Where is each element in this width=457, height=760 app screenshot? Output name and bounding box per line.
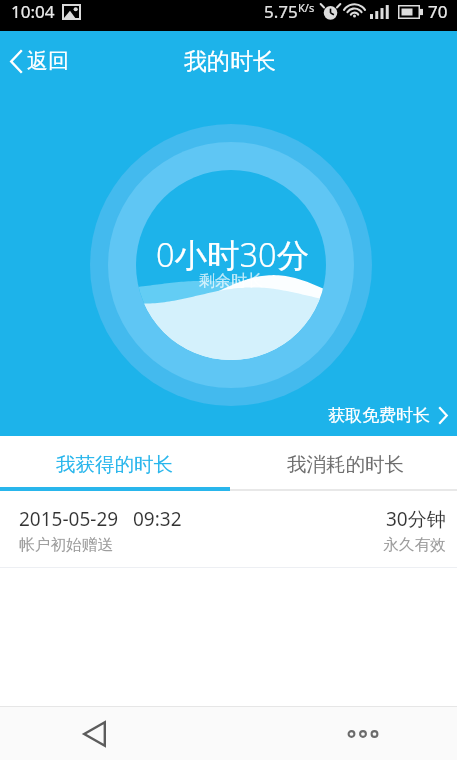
staticText: 剩余时长 [199, 271, 263, 291]
button[interactable]: 2015-05-29 [0, 491, 457, 567]
staticText: 09:32 [133, 506, 182, 532]
staticText: 我的时长 [184, 47, 276, 76]
button[interactable]: 返回 [0, 36, 85, 82]
staticText: 10:04 [11, 0, 55, 23]
staticText: 2015-05-29 [19, 506, 119, 532]
button[interactable]: Back [72, 712, 116, 756]
staticText: 30分钟 [386, 506, 446, 532]
staticText: 永久有效 [383, 535, 446, 555]
staticText: 0小时30分 [156, 232, 310, 276]
staticText: 70 [428, 0, 448, 23]
staticText: 我获得的时长 [56, 452, 173, 477]
staticText: 我消耗的时长 [287, 452, 404, 477]
button[interactable]: 我消耗的时长 [228, 436, 457, 487]
button[interactable]: 获取免费时长 [314, 397, 457, 436]
button[interactable]: 我获得的时长 [0, 436, 228, 487]
button[interactable]: Menu [341, 712, 385, 756]
staticText: 帐户初始赠送 [19, 535, 114, 555]
staticText: 获取免费时长 [328, 405, 430, 426]
staticText: K/s [298, 0, 315, 15]
staticText: 5.75 [264, 0, 298, 23]
staticText: 返回 [27, 48, 69, 74]
